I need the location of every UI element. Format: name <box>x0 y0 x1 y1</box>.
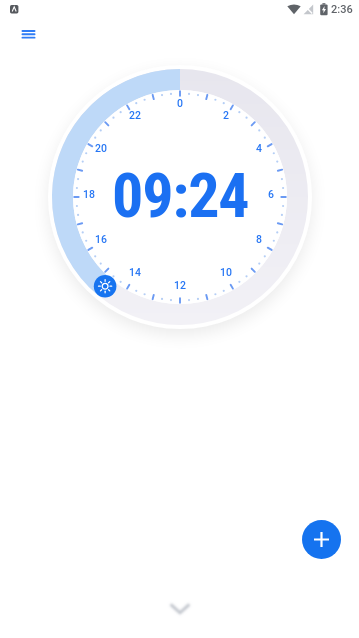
button[interactable] <box>94 275 117 298</box>
staticText: 16 <box>95 233 107 245</box>
staticText: 18 <box>83 188 95 200</box>
staticText: 12 <box>174 279 186 291</box>
staticText: 22 <box>129 109 141 121</box>
staticText: 0 <box>177 97 183 109</box>
staticText: 10 <box>220 266 232 278</box>
staticText: 2 <box>223 109 229 121</box>
button[interactable] <box>302 520 341 559</box>
staticText: 14 <box>129 266 141 278</box>
staticText: 4 <box>256 142 262 154</box>
staticText: 2:36 <box>331 3 353 16</box>
button[interactable] <box>164 596 196 622</box>
staticText: 20 <box>95 142 107 154</box>
staticText: 09:24 <box>112 159 249 232</box>
staticText: 6 <box>268 188 274 200</box>
button[interactable] <box>14 24 42 46</box>
staticText: 8 <box>256 233 262 245</box>
